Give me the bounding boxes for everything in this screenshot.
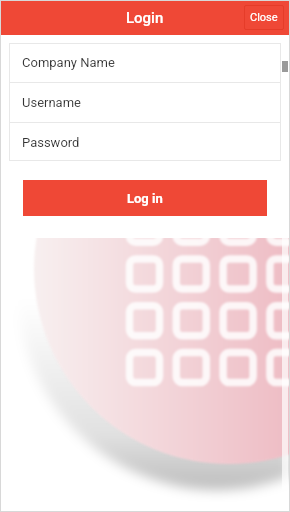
staticText: Company Name — [22, 55, 115, 70]
staticText: Close — [250, 11, 278, 24]
staticText: Username — [22, 95, 81, 110]
button[interactable]: Log in — [23, 180, 267, 216]
button[interactable]: Username — [9, 83, 281, 122]
button[interactable]: Company Name — [9, 43, 281, 82]
staticText: Password — [22, 135, 80, 150]
button[interactable]: Password — [9, 123, 281, 161]
button[interactable]: Close — [244, 5, 284, 30]
staticText: Login — [126, 9, 164, 27]
staticText: Log in — [127, 191, 163, 206]
